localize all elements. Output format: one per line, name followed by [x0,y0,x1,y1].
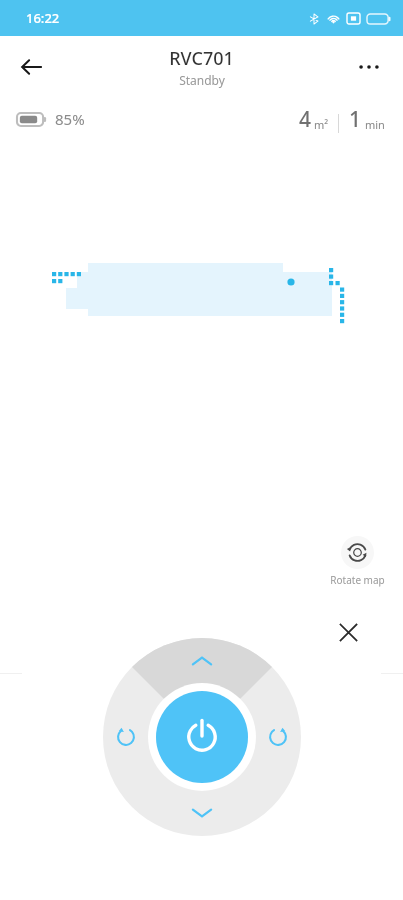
button[interactable]: Rotate left [103,714,149,760]
staticText: Rotate map [330,573,385,587]
staticText: 4 [299,105,312,134]
button[interactable]: Forward [179,638,225,684]
staticText: 1 [349,105,362,134]
staticText: 16:22 [26,9,60,27]
button[interactable]: Rotate right [255,714,301,760]
button[interactable]: Power [156,691,248,783]
staticText: min [365,117,385,132]
button[interactable]: Close [329,613,367,651]
button[interactable]: Rotate map [326,536,388,587]
button[interactable]: More options [345,43,393,91]
button[interactable]: Backward [179,790,225,836]
staticText: Standby [179,72,225,88]
staticText: RVC701 [169,46,234,71]
button[interactable]: Back [8,43,56,91]
staticText: m² [314,117,329,132]
staticText: 85% [55,109,85,129]
